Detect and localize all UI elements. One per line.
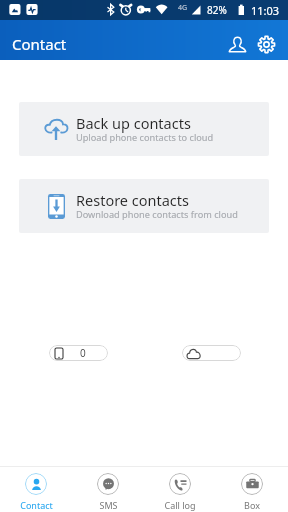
button[interactable]: Cloud contacts — [182, 345, 241, 361]
button[interactable]: Contact — [0, 467, 72, 512]
staticText: SMS — [99, 499, 118, 511]
button[interactable]: Account — [225, 32, 249, 56]
staticText: Back up contacts — [76, 113, 191, 133]
button[interactable]: Box — [216, 467, 288, 512]
staticText: Download phone contacts from cloud — [76, 208, 238, 221]
staticText: 82% — [207, 3, 227, 17]
staticText: Contact — [12, 34, 67, 54]
staticText: 11:03 — [251, 3, 280, 18]
staticText: Box — [244, 499, 260, 511]
staticText: 4G — [178, 3, 188, 13]
staticText: Upload phone contacts to cloud — [76, 131, 214, 144]
button[interactable]: Restore contacts — [19, 179, 269, 233]
button[interactable]: Call log — [144, 467, 216, 512]
staticText: Call log — [164, 499, 196, 511]
button[interactable]: SMS — [72, 467, 144, 512]
staticText: 0 — [80, 346, 86, 360]
staticText: Restore contacts — [76, 190, 189, 210]
button[interactable]: Back up contacts — [19, 102, 269, 156]
staticText: Contact — [20, 499, 53, 511]
button[interactable]: Phone contacts — [49, 345, 108, 361]
button[interactable]: Settings — [254, 32, 278, 56]
